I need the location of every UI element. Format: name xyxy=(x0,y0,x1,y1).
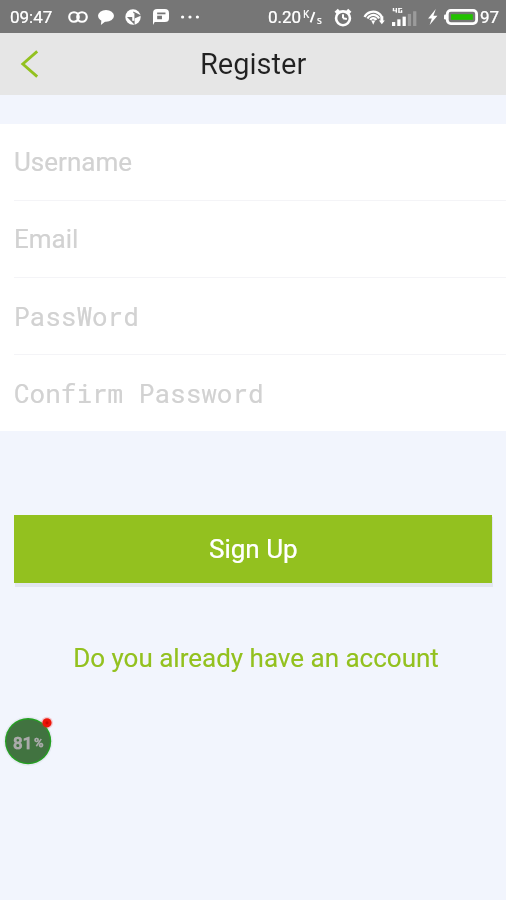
staticText: 09:47 xyxy=(10,7,53,27)
button[interactable]: Sign Up xyxy=(14,515,492,583)
staticText: s xyxy=(317,13,322,27)
staticText: % xyxy=(34,735,44,750)
staticText: Username xyxy=(14,147,132,177)
staticText: 97 xyxy=(480,7,500,27)
button[interactable]: Email xyxy=(0,201,506,277)
staticText: Sign Up xyxy=(209,534,298,564)
staticText: Email xyxy=(14,224,79,254)
staticText: K xyxy=(303,7,310,21)
staticText: PassWord xyxy=(14,299,139,333)
staticText: Confirm Password xyxy=(14,376,264,410)
button[interactable]: Back xyxy=(0,36,56,92)
staticText: Register xyxy=(200,47,307,81)
button[interactable]: PassWord xyxy=(0,278,506,354)
button[interactable]: Username xyxy=(0,124,506,200)
staticText: 81 xyxy=(13,733,33,753)
button[interactable]: Confirm Password xyxy=(0,355,506,431)
button[interactable]: Do you already have an account xyxy=(0,638,506,678)
button[interactable]: Battery 81 percent xyxy=(5,714,61,770)
staticText: 0.20 xyxy=(268,7,302,27)
